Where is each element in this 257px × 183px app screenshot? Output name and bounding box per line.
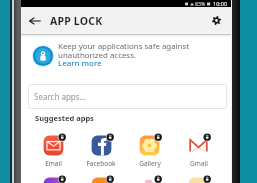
staticText: Email — [45, 159, 62, 168]
staticText: Keep your applications safe against — [58, 41, 190, 52]
staticText: APP LOCK — [50, 14, 103, 28]
button[interactable]: Gallery — [125, 134, 174, 168]
button[interactable]: Gmail — [174, 134, 223, 168]
staticText: Suggested apps — [35, 113, 94, 123]
staticText: Facebook — [86, 159, 116, 168]
staticText: Search apps... — [34, 91, 86, 102]
button[interactable]: Facebook — [77, 134, 125, 168]
button[interactable]: Keep your applications safe against — [21, 37, 231, 75]
staticText: Gmail — [190, 159, 208, 168]
staticText: 83% — [195, 0, 206, 7]
staticText: Gallery — [139, 159, 161, 168]
button[interactable] — [77, 176, 125, 183]
button[interactable] — [29, 176, 77, 183]
staticText: 10:00 — [213, 0, 228, 7]
button[interactable] — [125, 176, 174, 183]
button[interactable]: Settings — [207, 11, 226, 30]
button[interactable] — [174, 176, 223, 183]
staticText: unauthorized access. — [58, 50, 137, 61]
button[interactable]: Email — [29, 134, 77, 168]
button[interactable]: Search apps... — [28, 84, 227, 109]
button[interactable]: Learn more — [58, 58, 102, 69]
button[interactable]: Back — [25, 11, 44, 30]
